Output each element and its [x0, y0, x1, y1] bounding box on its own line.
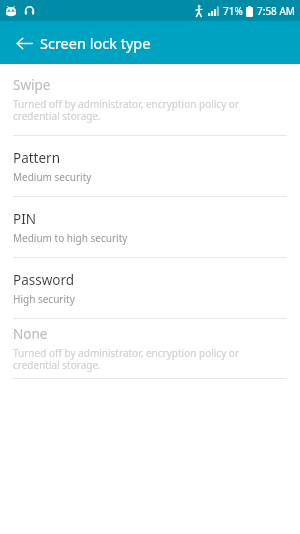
staticText: 7:58 AM	[257, 4, 295, 18]
staticText: PIN	[13, 210, 37, 228]
button[interactable]: None	[0, 319, 300, 378]
staticText: Swipe	[13, 76, 51, 94]
staticText: Screen lock type	[40, 33, 151, 53]
button[interactable]: Password	[0, 258, 300, 318]
staticText: Pattern	[13, 149, 61, 167]
button[interactable]: Navigate up	[8, 27, 40, 59]
staticText: Turned off by administrator, encryption …	[13, 346, 286, 372]
staticText: Password	[13, 271, 75, 289]
staticText: Medium to high security	[13, 231, 128, 245]
staticText: None	[13, 325, 48, 343]
staticText: Medium security	[13, 170, 92, 184]
button[interactable]: Swipe	[0, 64, 300, 135]
staticText: 71%	[223, 4, 243, 18]
staticText: Turned off by administrator, encryption …	[13, 97, 286, 123]
button[interactable]: Pattern	[0, 136, 300, 196]
button[interactable]: PIN	[0, 197, 300, 257]
staticText: High security	[13, 292, 75, 306]
